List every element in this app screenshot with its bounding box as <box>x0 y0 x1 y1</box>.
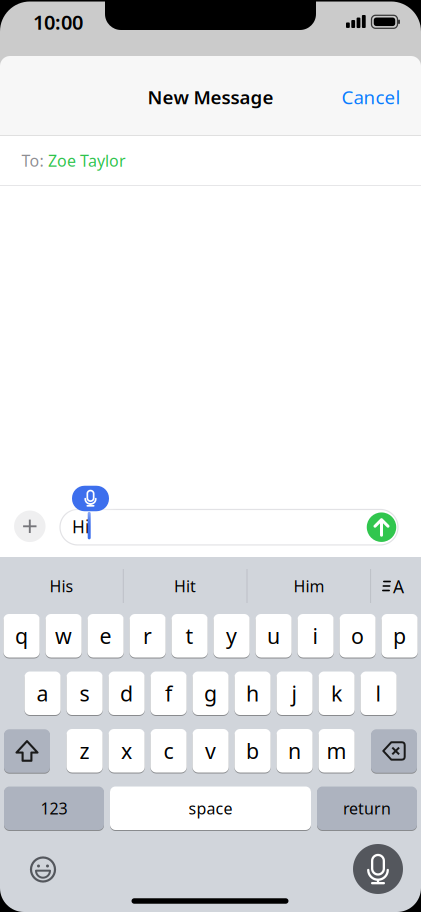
staticText: o <box>351 622 364 650</box>
button[interactable]: A <box>372 566 416 606</box>
staticText: t <box>186 622 194 650</box>
staticText: m <box>327 737 347 765</box>
staticText: 10:00 <box>33 9 83 35</box>
staticText: j <box>292 679 298 707</box>
button[interactable]: d <box>108 671 145 715</box>
button[interactable]: c <box>150 728 187 773</box>
staticText: Zoe Taylor <box>48 150 126 171</box>
button[interactable] <box>4 729 50 773</box>
staticText: q <box>15 622 28 650</box>
staticText: Him <box>293 575 324 597</box>
button[interactable]: p <box>381 613 418 658</box>
staticText: New Message <box>147 85 273 109</box>
staticText: Hit <box>174 575 196 597</box>
button[interactable]: Him <box>254 566 364 606</box>
staticText: s <box>80 679 90 707</box>
button[interactable]: g <box>192 671 229 715</box>
staticText: y <box>226 622 237 650</box>
button[interactable]: Hit <box>130 566 240 606</box>
staticText: space <box>188 798 232 819</box>
staticText: g <box>204 679 217 707</box>
button[interactable] <box>72 486 109 511</box>
staticText: a <box>37 679 49 707</box>
button[interactable]: a <box>24 671 61 715</box>
button[interactable]: k <box>318 671 355 715</box>
button[interactable]: space <box>110 786 311 830</box>
button[interactable]: n <box>276 728 313 773</box>
button[interactable]: y <box>213 613 250 658</box>
button[interactable]: b <box>234 728 271 773</box>
button[interactable]: i <box>297 613 334 658</box>
staticText: l <box>376 679 382 707</box>
button[interactable] <box>14 510 46 542</box>
button[interactable] <box>367 512 396 542</box>
button[interactable]: Cancel <box>331 75 411 119</box>
staticText: Cancel <box>341 85 400 109</box>
staticText: k <box>331 679 342 707</box>
staticText: c <box>164 737 174 765</box>
button[interactable]: x <box>108 728 145 773</box>
button[interactable]: j <box>276 671 313 715</box>
button[interactable]: t <box>171 613 208 658</box>
button[interactable]: r <box>129 613 166 658</box>
staticText: 123 <box>40 798 67 819</box>
staticText: His <box>49 575 73 597</box>
button[interactable]: o <box>339 613 376 658</box>
button[interactable]: z <box>66 728 103 773</box>
staticText: v <box>205 737 216 765</box>
button[interactable]: w <box>45 613 82 658</box>
staticText: f <box>165 679 172 707</box>
button[interactable] <box>353 844 403 894</box>
button[interactable]: Hi <box>60 509 398 545</box>
button[interactable]: To: <box>0 136 421 185</box>
staticText: h <box>246 679 259 707</box>
button[interactable]: His <box>6 566 116 606</box>
button[interactable]: v <box>192 728 229 773</box>
button[interactable]: l <box>360 671 397 715</box>
staticText: A <box>393 575 404 598</box>
staticText: z <box>80 737 90 765</box>
staticText: return <box>343 798 391 819</box>
button[interactable]: m <box>318 728 355 773</box>
staticText: x <box>121 737 132 765</box>
button[interactable]: f <box>150 671 187 715</box>
button[interactable]: q <box>3 613 40 658</box>
staticText: e <box>100 622 112 650</box>
button[interactable] <box>21 847 65 891</box>
button[interactable]: e <box>87 613 124 658</box>
button[interactable]: h <box>234 671 271 715</box>
button[interactable]: u <box>255 613 292 658</box>
staticText: b <box>246 737 259 765</box>
staticText: w <box>55 622 72 650</box>
staticText: u <box>267 622 280 650</box>
staticText: Hi <box>72 515 89 538</box>
staticText: r <box>143 622 152 650</box>
button[interactable]: return <box>317 786 417 830</box>
staticText: i <box>313 622 319 650</box>
staticText: p <box>393 622 406 650</box>
staticText: n <box>288 737 301 765</box>
button[interactable]: s <box>66 671 103 715</box>
staticText: To: <box>21 150 43 171</box>
button[interactable]: 123 <box>4 786 104 830</box>
staticText: d <box>120 679 133 707</box>
button[interactable] <box>371 729 417 773</box>
